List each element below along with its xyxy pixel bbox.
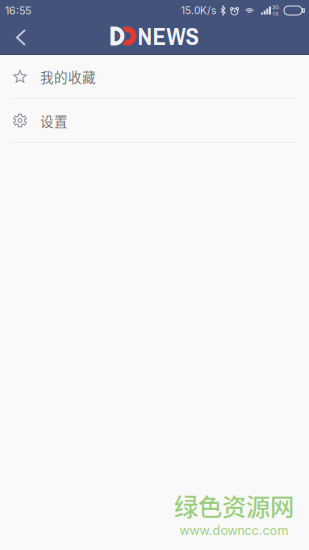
staticText: 16:55 [5, 4, 31, 17]
staticText: 绿色资源网 [174, 488, 294, 523]
staticText: 15.0K/s [181, 4, 216, 17]
staticText: TX [272, 10, 279, 17]
button[interactable]: Back [0, 21, 42, 54]
staticText: 3G [272, 4, 279, 10]
button[interactable]: 我的收藏 [0, 55, 309, 99]
staticText: 我的收藏 [40, 67, 96, 86]
button[interactable]: 设置 [0, 99, 309, 143]
staticText: www.downcc.com [179, 523, 288, 538]
staticText: NEWS [137, 19, 199, 53]
staticText: 设置 [40, 111, 68, 130]
